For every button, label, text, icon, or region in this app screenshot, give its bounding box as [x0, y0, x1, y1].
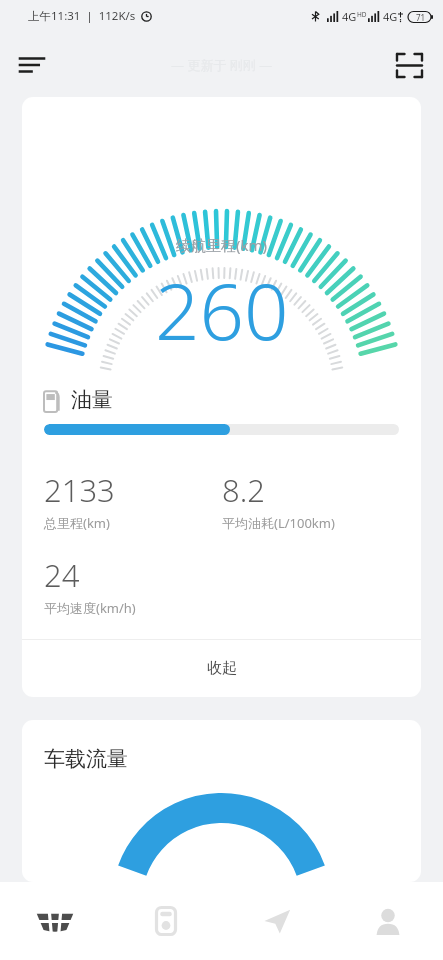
staticText: 8.2: [222, 469, 265, 511]
staticText: — 更新于 刚刚 —: [171, 56, 273, 74]
staticText: 260: [155, 257, 289, 363]
button[interactable]: Navigation: [221, 882, 332, 960]
staticText: 收起: [207, 659, 237, 678]
button[interactable]: 车载流量: [22, 720, 421, 882]
staticText: 4G: [383, 9, 398, 24]
staticText: 24: [44, 554, 80, 596]
staticText: 上午11:31 | 112K/s: [28, 8, 136, 24]
staticText: 续航里程(km): [176, 235, 268, 255]
button[interactable]: 收起: [22, 640, 421, 697]
staticText: 总里程(km): [44, 514, 110, 532]
button[interactable]: Remote: [110, 882, 221, 960]
staticText: 71: [416, 12, 426, 23]
staticText: 平均速度(km/h): [44, 599, 136, 617]
button[interactable]: Profile: [332, 882, 443, 960]
button[interactable]: Scan: [385, 41, 433, 89]
staticText: HD: [357, 10, 367, 19]
staticText: 4G: [342, 9, 357, 24]
staticText: 2133: [44, 469, 115, 511]
button[interactable]: Car: [0, 882, 110, 960]
button[interactable]: Menu: [8, 41, 56, 89]
staticText: 平均油耗(L/100km): [222, 514, 335, 532]
staticText: 车载流量: [44, 746, 128, 772]
staticText: 油量: [71, 387, 113, 413]
